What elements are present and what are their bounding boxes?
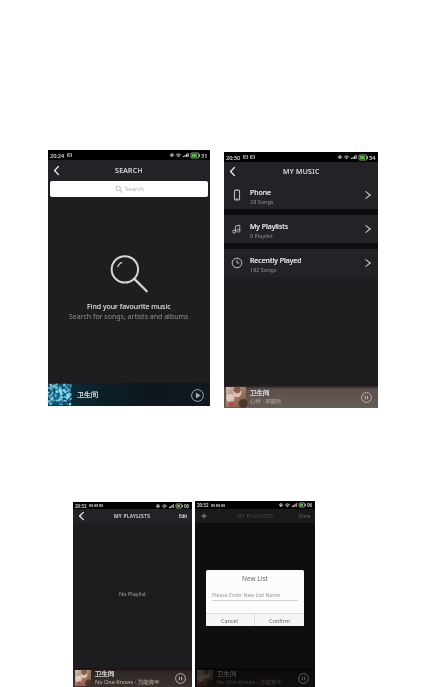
button[interactable]: Play (187, 385, 207, 405)
staticText: 20:24 (50, 152, 65, 159)
button[interactable]: Back (48, 160, 64, 181)
staticText: Phone (250, 188, 272, 198)
button[interactable]: Done (299, 509, 311, 523)
staticText: Edit (179, 513, 188, 519)
staticText: 卫生间 (217, 670, 237, 678)
button[interactable]: 卫生间 (224, 385, 378, 408)
staticText: 卫生间 (77, 390, 98, 399)
staticText: 06 (184, 503, 190, 509)
staticText: MY PLAYLISTS (114, 513, 151, 520)
button[interactable]: Confirm (255, 614, 304, 626)
staticText: Search (125, 185, 144, 193)
staticText: Done (299, 513, 311, 519)
button[interactable]: Add playlist (195, 509, 213, 523)
button[interactable]: Cancel (206, 614, 254, 626)
staticText: 06 (307, 502, 313, 508)
staticText: MY PLAYLISTS (237, 513, 274, 520)
staticText: 心碎 · 邓丽欣 (250, 397, 282, 405)
button[interactable]: My Playlists (224, 215, 378, 243)
staticText: Please Enter New List Name (212, 591, 281, 598)
staticText: No Playlist (119, 590, 147, 597)
button[interactable]: Pause (295, 670, 311, 686)
staticText: 20:32 (75, 503, 87, 509)
staticText: Cancel (221, 617, 239, 624)
staticText: Confirm (269, 617, 290, 624)
button[interactable]: Recently Played (224, 249, 378, 277)
button[interactable]: Edit (179, 509, 188, 523)
staticText: No One Knows - 万能青年 (217, 678, 282, 686)
staticText: 34 (369, 154, 376, 161)
button[interactable]: 卫生间 (195, 668, 315, 687)
button[interactable]: Pause (358, 389, 374, 405)
staticText: Find your favourite music (87, 302, 171, 312)
staticText: My Playlists (250, 222, 289, 232)
staticText: 20:30 (226, 154, 241, 161)
button[interactable]: Pause (172, 670, 188, 686)
staticText: 卫生间 (95, 670, 115, 678)
staticText: Recently Played (250, 256, 302, 266)
button[interactable]: Back (73, 509, 89, 523)
staticText: MY MUSIC (283, 167, 320, 177)
button[interactable]: 卫生间 (73, 668, 192, 687)
button[interactable]: Phone (224, 181, 378, 209)
staticText: 20:32 (197, 502, 209, 508)
staticText: 卫生间 (250, 389, 270, 397)
button[interactable]: Back (224, 162, 240, 181)
staticText: No One Knows - 万能青年 (95, 678, 160, 686)
button[interactable]: Search (50, 181, 208, 197)
staticText: 31 (201, 152, 208, 159)
button[interactable]: 卫生间 (48, 383, 210, 406)
staticText: 182 Songs (250, 266, 277, 273)
staticText: 0 Playlist (250, 232, 273, 239)
staticText: New List (206, 574, 304, 583)
staticText: 28 Songs (250, 198, 274, 205)
staticText: SEARCH (115, 166, 143, 176)
staticText: Search for songs, artists and albums (69, 312, 189, 322)
